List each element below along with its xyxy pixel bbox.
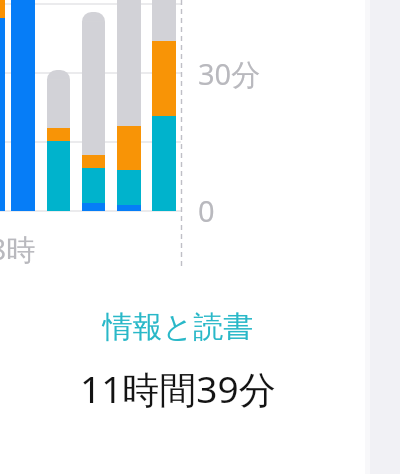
button[interactable]: Screen time usage chart	[0, 0, 400, 474]
